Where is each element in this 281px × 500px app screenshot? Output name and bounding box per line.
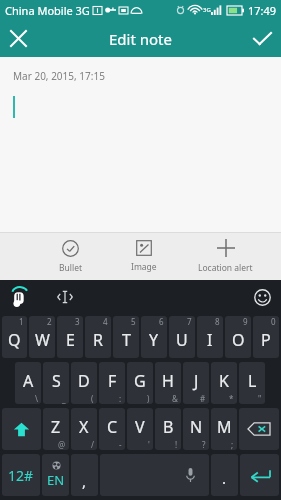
button[interactable]: Comma	[71, 454, 98, 496]
button[interactable]: Z	[43, 408, 69, 450]
staticText: 5	[131, 316, 136, 327]
button[interactable]: Period	[211, 454, 238, 496]
staticText: B	[163, 416, 174, 438]
button[interactable]: F	[99, 362, 125, 404]
staticText: N	[190, 416, 203, 438]
staticText: G	[134, 370, 146, 392]
staticText: M	[217, 416, 232, 438]
staticText: 0	[271, 316, 276, 327]
button[interactable]: Delete	[239, 408, 279, 450]
button[interactable]: 0	[253, 316, 279, 358]
staticText: Q	[8, 329, 21, 351]
staticText: *	[229, 393, 234, 404]
staticText: 17:49	[248, 3, 277, 18]
button[interactable]: Enter	[240, 454, 279, 496]
button[interactable]: Bullet	[34, 233, 107, 280]
staticText: /	[91, 439, 94, 450]
button[interactable]: 2	[29, 316, 55, 358]
button[interactable]: C	[99, 408, 125, 450]
button[interactable]: S	[43, 362, 69, 404]
staticText: 1	[19, 316, 24, 327]
button[interactable]: 8	[197, 316, 223, 358]
button[interactable]: Mar 20, 2015, 17:15	[0, 57, 281, 232]
staticText: '	[148, 439, 150, 450]
button[interactable]: Space	[100, 454, 209, 496]
staticText: #	[200, 393, 206, 404]
button[interactable]: V	[127, 408, 153, 450]
staticText: !	[175, 439, 178, 450]
staticText: "	[258, 393, 262, 404]
button[interactable]: H	[155, 362, 181, 404]
button[interactable]: Save	[244, 20, 281, 57]
staticText: Edit note	[109, 29, 172, 49]
button[interactable]: EN	[42, 454, 69, 496]
staticText: )	[147, 393, 150, 404]
staticText: 7	[187, 316, 192, 327]
button[interactable]: 12#	[2, 454, 40, 496]
staticText: Image	[131, 261, 157, 273]
staticText: 2	[47, 316, 52, 327]
button[interactable]: X	[71, 408, 97, 450]
button[interactable]: Move cursor	[52, 284, 78, 310]
staticText: 3	[75, 316, 80, 327]
staticText: 12#	[8, 466, 34, 485]
staticText: I	[207, 329, 213, 351]
staticText: ;	[231, 439, 234, 450]
button[interactable]: J	[183, 362, 209, 404]
staticText: @	[58, 439, 66, 450]
staticText: 9	[243, 316, 248, 327]
staticText: K	[219, 370, 229, 392]
staticText: &	[172, 393, 178, 404]
button[interactable]: 1	[2, 316, 27, 358]
staticText: :	[119, 393, 122, 404]
staticText: C	[107, 416, 118, 438]
staticText: D	[78, 370, 90, 392]
staticText: Location alert	[198, 262, 253, 274]
staticText: U	[176, 329, 188, 351]
button[interactable]: 3	[57, 316, 83, 358]
button[interactable]: Shift	[2, 408, 41, 450]
staticText: EN	[47, 471, 65, 489]
staticText: T	[122, 329, 131, 351]
staticText: Bullet	[59, 262, 83, 274]
staticText: _	[62, 393, 66, 404]
staticText: R	[93, 329, 103, 351]
staticText: S	[52, 370, 61, 392]
button[interactable]: K	[211, 362, 237, 404]
button[interactable]: Image	[107, 233, 180, 280]
button[interactable]: G	[127, 362, 153, 404]
staticText: H	[162, 370, 174, 392]
button[interactable]: 5	[113, 316, 139, 358]
staticText: (	[91, 393, 94, 404]
button[interactable]: D	[71, 362, 97, 404]
button[interactable]: 6	[141, 316, 167, 358]
staticText: E	[66, 329, 75, 351]
button[interactable]: N	[183, 408, 209, 450]
button[interactable]: Emoji	[249, 284, 275, 310]
staticText: ?	[202, 439, 206, 450]
button[interactable]: M	[211, 408, 237, 450]
staticText: .	[222, 468, 227, 488]
staticText: F	[108, 370, 117, 392]
button[interactable]: 9	[225, 316, 251, 358]
button[interactable]: 7	[169, 316, 195, 358]
staticText: -	[119, 439, 122, 450]
button[interactable]: 4	[85, 316, 111, 358]
staticText: O	[232, 329, 245, 351]
staticText: Y	[149, 329, 159, 351]
staticText: 8	[215, 316, 220, 327]
staticText: L	[248, 370, 257, 392]
staticText: W	[35, 329, 50, 351]
button[interactable]: Handwriting	[6, 284, 32, 310]
button[interactable]: L	[239, 362, 265, 404]
staticText: China Mobile 3G	[5, 3, 90, 18]
staticText: Z	[51, 416, 61, 438]
staticText: 3G	[203, 6, 211, 14]
staticText: 6	[159, 316, 164, 327]
button[interactable]: Close	[0, 20, 37, 57]
button[interactable]: B	[155, 408, 181, 450]
button[interactable]: Location alert	[180, 233, 271, 280]
staticText: P	[261, 329, 271, 351]
button[interactable]: A	[15, 362, 41, 404]
staticText: \	[35, 393, 38, 404]
